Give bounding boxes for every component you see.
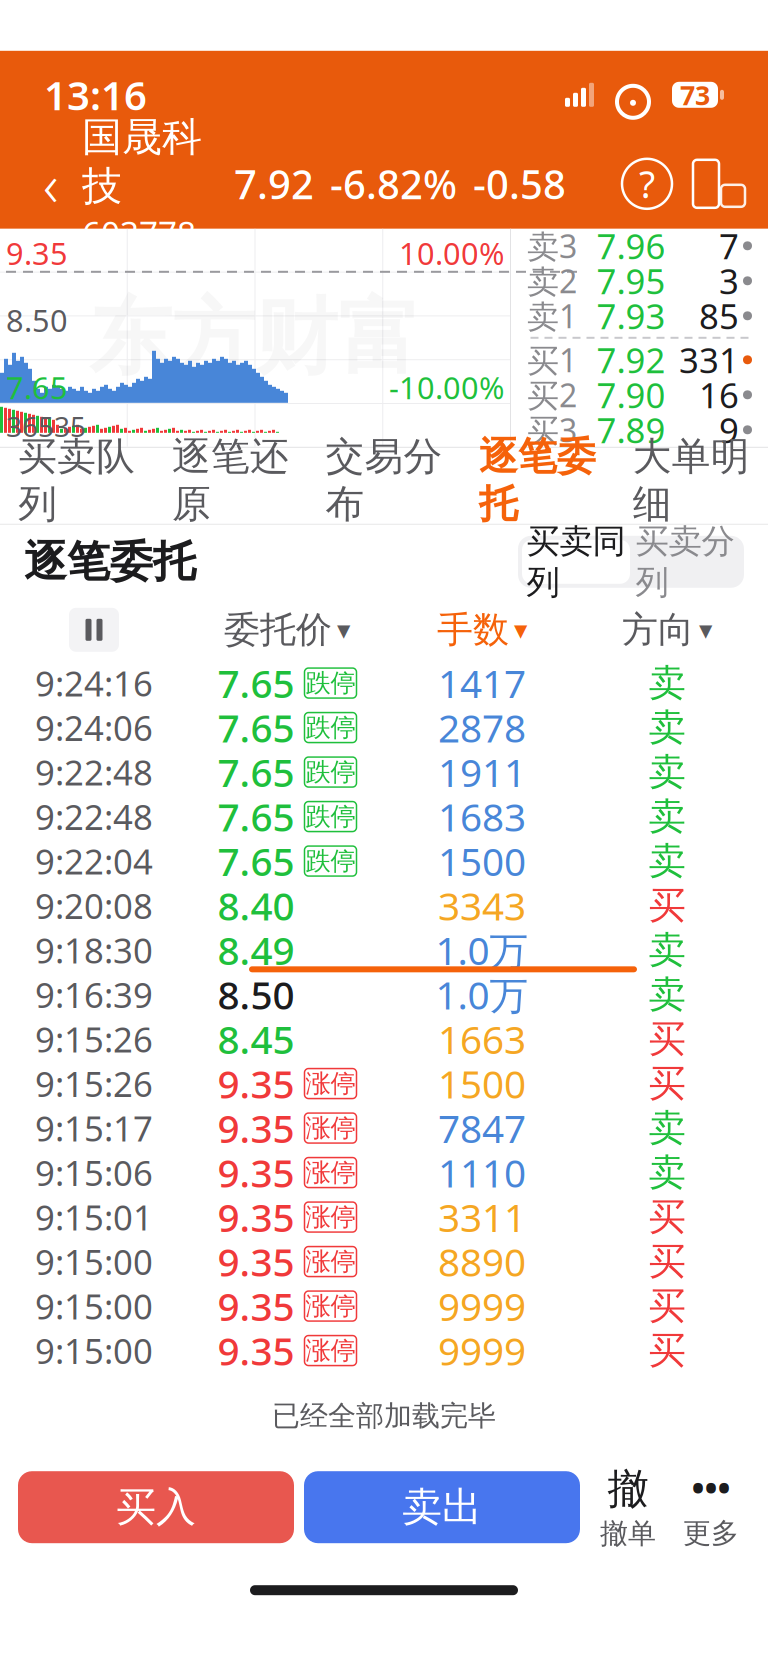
button[interactable]: 大单明细 — [614, 448, 768, 524]
staticText: 委托价 — [224, 608, 332, 652]
staticText: 8.49 — [217, 924, 294, 976]
staticText: 10.00% — [399, 233, 504, 273]
staticText: 买卖队列 — [18, 433, 135, 528]
staticText: 9:18:30 — [35, 927, 153, 973]
staticText: 1.0万 — [435, 969, 528, 1020]
staticText: 16 — [699, 372, 739, 418]
staticText: 9:15:17 — [35, 1105, 153, 1151]
staticText: 9:24:06 — [35, 704, 153, 750]
staticText: 逐笔还原 — [172, 433, 289, 528]
staticText: 卖出 — [402, 1483, 482, 1532]
staticText: 7.92 — [234, 157, 314, 210]
staticText: 卖 — [648, 660, 685, 706]
staticText: 8890 — [438, 1236, 526, 1287]
staticText: 跌停 — [305, 667, 355, 699]
staticText: 8.40 — [217, 880, 294, 931]
staticText: 36535 — [6, 408, 86, 445]
staticText: 7.65 — [217, 746, 294, 798]
button[interactable]: Help — [622, 159, 672, 209]
button[interactable]: 委托价 — [224, 608, 350, 652]
staticText: 3311 — [438, 1191, 526, 1243]
button[interactable]: 买卖同列 — [522, 540, 630, 584]
staticText: 9.35 — [217, 1191, 294, 1243]
staticText: 9:15:26 — [35, 1060, 153, 1106]
staticText: ? — [639, 159, 655, 209]
staticText: 交易分布 — [325, 433, 442, 528]
staticText: -10.00% — [389, 367, 504, 408]
staticText: 买卖同列 — [526, 521, 625, 603]
staticText: 卖 — [648, 1150, 685, 1195]
staticText: 国晟科技 — [82, 112, 202, 211]
staticText: 1500 — [438, 1058, 526, 1109]
staticText: 卖 — [648, 838, 685, 884]
staticText: 涨停 — [305, 1068, 355, 1099]
staticText: 卖 — [648, 705, 685, 750]
staticText: 卖3 — [527, 225, 577, 267]
staticText: 603778 — [82, 211, 196, 255]
button[interactable]: 撤 — [588, 1464, 668, 1551]
button[interactable]: 买入 — [18, 1471, 294, 1543]
staticText: 7 — [719, 223, 739, 269]
staticText: 7.92 — [596, 337, 665, 383]
staticText: 9.35 — [6, 233, 68, 273]
button[interactable]: 卖出 — [304, 1471, 580, 1543]
staticText: 买1 — [527, 339, 577, 381]
button[interactable]: 方向 — [622, 608, 712, 652]
staticText: 1417 — [438, 657, 526, 709]
button[interactable]: 交易分布 — [307, 448, 461, 524]
staticText: 涨停 — [305, 1335, 355, 1366]
staticText: 2878 — [438, 702, 526, 753]
staticText: -6.82% — [330, 157, 457, 210]
staticText: 跌停 — [305, 756, 355, 788]
staticText: 9.35 — [217, 1147, 294, 1198]
staticText: 涨停 — [305, 1290, 355, 1322]
button[interactable]: Pause — [69, 608, 119, 652]
button[interactable]: Back — [20, 149, 82, 219]
staticText: 9 — [719, 407, 739, 453]
staticText: 卖 — [648, 749, 685, 795]
staticText: ••• — [691, 1464, 730, 1510]
staticText: 买 — [648, 1194, 685, 1240]
button[interactable]: 买卖队列 — [0, 448, 154, 524]
staticText: ▾ — [699, 615, 712, 645]
staticText: 涨停 — [305, 1112, 355, 1144]
staticText: 9:20:08 — [35, 882, 153, 928]
staticText: 9.35 — [217, 1236, 294, 1287]
button[interactable]: ••• — [668, 1464, 754, 1550]
button[interactable]: 手数 — [437, 608, 527, 652]
staticText: 7.89 — [596, 407, 665, 453]
staticText: 8.45 — [217, 1013, 294, 1065]
button[interactable]: Share — [690, 155, 748, 213]
staticText: 7847 — [438, 1102, 526, 1154]
button[interactable]: 逐笔委托 — [461, 448, 614, 524]
staticText: 卖 — [648, 972, 685, 1017]
staticText: 9:22:04 — [35, 838, 153, 884]
staticText: 8.50 — [6, 300, 68, 341]
staticText: 卖 — [648, 927, 685, 973]
staticText: 涨停 — [305, 1246, 355, 1277]
staticText: 7.96 — [596, 223, 665, 269]
staticText: 3 — [719, 258, 739, 304]
staticText: 9.35 — [217, 1102, 294, 1154]
staticText: 买 — [648, 1016, 685, 1062]
staticText: 9.35 — [217, 1058, 294, 1109]
button[interactable]: 买卖分列 — [630, 540, 740, 584]
staticText: ▾ — [337, 615, 350, 645]
staticText: 1110 — [438, 1147, 526, 1198]
staticText: 1663 — [438, 1013, 526, 1065]
staticText: 7.90 — [596, 372, 665, 418]
staticText: 331 — [679, 337, 739, 383]
staticText: 跌停 — [305, 845, 355, 877]
staticText: 1683 — [438, 791, 526, 842]
staticText: -0.58 — [473, 157, 566, 210]
staticText: 已经全部加载完毕 — [272, 1399, 496, 1433]
staticText: 73 — [680, 77, 710, 112]
staticText: 卖1 — [527, 295, 577, 337]
staticText: 买3 — [527, 409, 577, 451]
staticText: 卖 — [648, 1105, 685, 1151]
button[interactable]: 逐笔还原 — [154, 448, 307, 524]
staticText: 买 — [648, 1328, 685, 1373]
staticText: 更多 — [683, 1516, 739, 1550]
staticText: 9:15:26 — [35, 1016, 153, 1062]
staticText: ‹ — [43, 145, 59, 223]
